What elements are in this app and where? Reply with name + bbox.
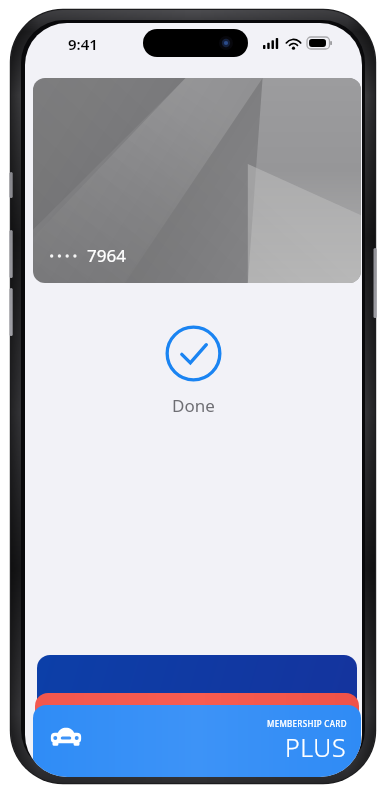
staticText: MEMBERSHIP CARD — [267, 718, 347, 729]
staticText: Done — [172, 394, 215, 417]
staticText: PLUS — [285, 730, 347, 764]
button[interactable]: Done — [165, 325, 222, 382]
button[interactable] — [35, 693, 359, 753]
staticText: 9:41 — [68, 34, 98, 54]
staticText: 7964 — [87, 244, 126, 267]
button[interactable] — [37, 655, 357, 755]
button[interactable]: MEMBERSHIP CARD — [33, 705, 361, 777]
button[interactable]: 7964 — [33, 78, 361, 283]
